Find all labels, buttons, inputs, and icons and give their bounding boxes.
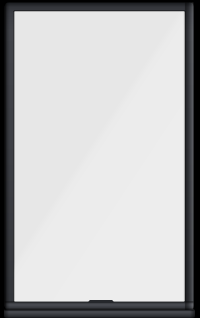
button[interactable]: Device screen <box>14 11 185 302</box>
